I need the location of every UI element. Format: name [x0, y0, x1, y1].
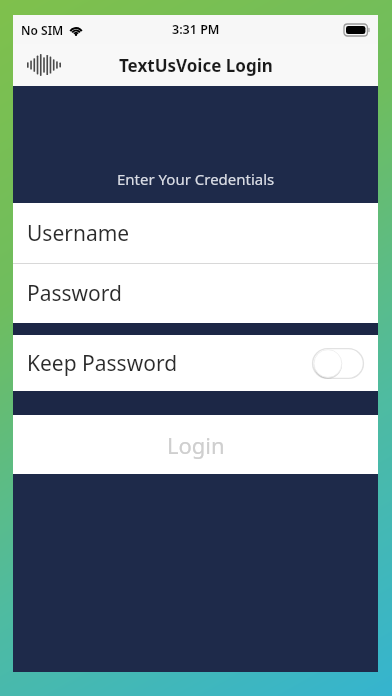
button[interactable]: Keep Password — [13, 335, 378, 391]
button[interactable]: Password — [13, 264, 378, 323]
button[interactable]: Keep Password toggle, off — [312, 348, 364, 379]
staticText: TextUsVoice Login — [119, 54, 273, 77]
staticText: Username — [27, 219, 130, 248]
staticText: Login — [167, 430, 225, 460]
staticText: Keep Password — [27, 349, 178, 378]
button[interactable]: Voice waveform — [27, 48, 61, 82]
staticText: 3:31 PM — [172, 21, 220, 38]
staticText: No SIM — [21, 22, 64, 38]
button[interactable]: Login — [13, 415, 378, 474]
staticText: Password — [27, 279, 122, 308]
staticText: Enter Your Credentials — [117, 169, 275, 189]
button[interactable]: Username — [13, 203, 378, 263]
